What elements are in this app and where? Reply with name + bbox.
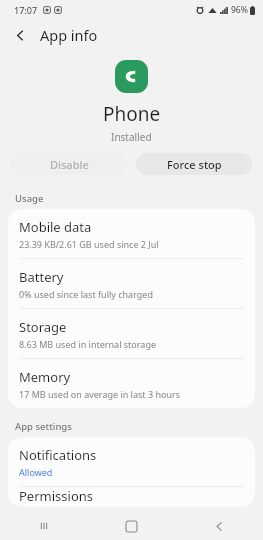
staticText: Memory (19, 368, 71, 386)
staticText: 96% (231, 4, 248, 16)
staticText: Installed (111, 130, 152, 144)
button[interactable]: Home (87, 512, 175, 540)
button[interactable]: Storage (8, 309, 255, 358)
button[interactable]: Back (6, 21, 34, 49)
staticText: 23.39 KB/2.61 GB used since 2 Jul (19, 238, 159, 250)
staticText: Mobile data (19, 218, 92, 236)
button[interactable]: Permissions (8, 487, 255, 507)
staticText: Usage (15, 192, 44, 205)
button[interactable]: Notifications (8, 437, 255, 486)
button[interactable]: Memory (8, 359, 255, 408)
staticText: App settings (15, 420, 72, 433)
staticText: Permissions (19, 487, 94, 505)
staticText: 17:07 (14, 4, 38, 16)
staticText: Disable (50, 157, 89, 172)
staticText: Allowed (19, 466, 53, 478)
button[interactable]: Mobile data (8, 209, 255, 258)
staticText: Storage (19, 318, 67, 336)
staticText: App info (40, 25, 98, 45)
button[interactable]: Recent apps (0, 512, 87, 540)
button[interactable]: Back (175, 512, 263, 540)
staticText: 0% used since last fully charged (19, 288, 153, 300)
button[interactable]: Force stop (136, 153, 252, 175)
button[interactable]: Disable (11, 153, 127, 175)
staticText: Force stop (167, 157, 222, 172)
button[interactable]: Battery (8, 259, 255, 308)
staticText: Notifications (19, 446, 97, 464)
staticText: 17 MB used on average in last 3 hours (19, 388, 180, 400)
staticText: Phone (103, 101, 161, 127)
staticText: 8.63 MB used in internal storage (19, 338, 156, 350)
staticText: Battery (19, 268, 64, 286)
